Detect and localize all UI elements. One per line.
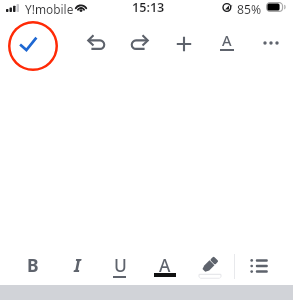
staticText: U: [114, 253, 127, 277]
button[interactable]: Format: [210, 26, 244, 60]
staticText: 15:13: [132, 0, 165, 16]
button[interactable]: List: [243, 250, 275, 282]
button[interactable]: Italic: [61, 250, 93, 282]
staticText: A: [159, 253, 171, 277]
button[interactable]: Redo: [123, 26, 157, 60]
button[interactable]: Insert: [167, 27, 201, 61]
button[interactable]: Bold: [17, 250, 49, 282]
staticText: A: [222, 30, 232, 50]
button[interactable]: Undo: [79, 26, 113, 60]
button[interactable]: Underline: [104, 250, 136, 282]
staticText: 85%: [237, 1, 262, 18]
staticText: I: [74, 253, 81, 277]
button[interactable]: Text color: [149, 250, 181, 282]
button[interactable]: Highlight: [194, 250, 226, 282]
button[interactable]: More options: [254, 26, 288, 60]
staticText: Y!mobile: [25, 1, 74, 17]
staticText: B: [27, 253, 39, 277]
button[interactable]: Done: [8, 21, 58, 71]
